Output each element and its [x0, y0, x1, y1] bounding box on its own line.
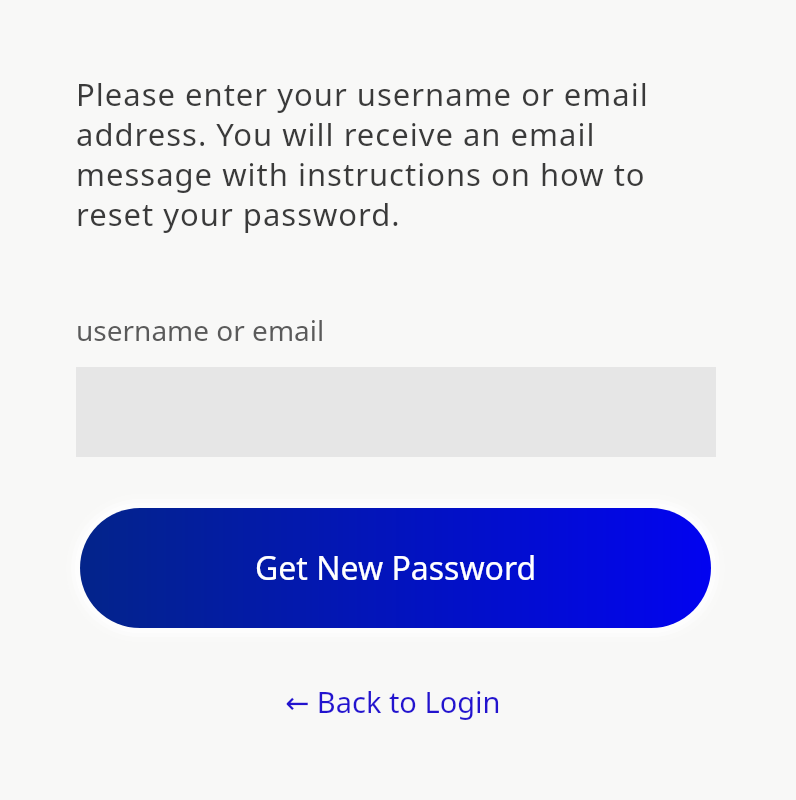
staticText: Get New Password — [255, 546, 537, 590]
staticText: username or email — [76, 311, 325, 349]
staticText: Please enter your username or email addr… — [76, 73, 649, 235]
button[interactable]: Get New Password — [80, 508, 711, 628]
button[interactable]: ← Back to Login — [285, 682, 501, 721]
